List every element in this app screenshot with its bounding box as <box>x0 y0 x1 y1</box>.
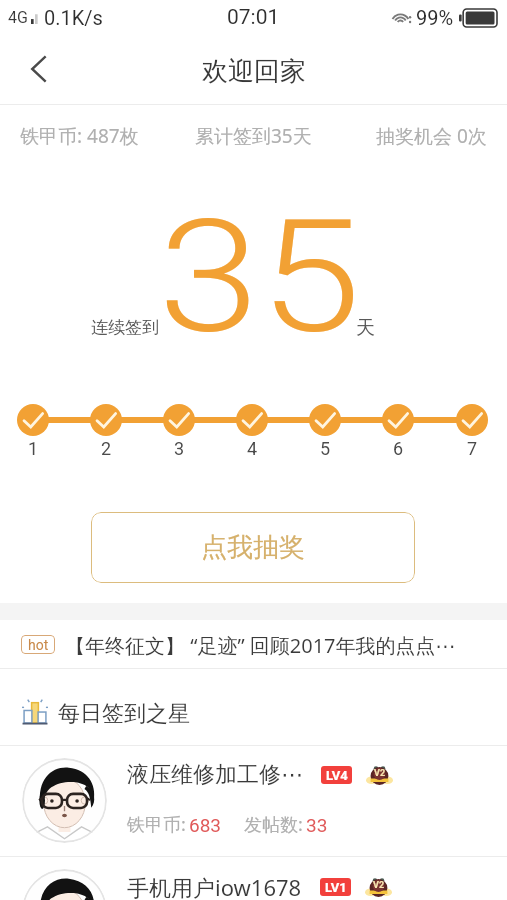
staticText: 683 <box>189 814 222 836</box>
staticText: 5 <box>320 438 331 459</box>
staticText: 4 <box>247 438 258 459</box>
staticText: 07:01 <box>227 5 280 30</box>
staticText: 4G <box>8 8 28 27</box>
staticText: 点我抽奖 <box>201 531 305 564</box>
staticText: 0.1K/s <box>44 6 103 29</box>
staticText: 3 <box>174 438 185 459</box>
staticText: 33 <box>306 814 328 836</box>
staticText: 抽奖机会 0次 <box>376 123 487 149</box>
staticText: 累计签到35天 <box>195 123 312 149</box>
staticText: 天 <box>356 316 375 340</box>
staticText: 欢迎回家 <box>202 55 306 88</box>
button[interactable]: Back <box>0 34 76 104</box>
button[interactable]: 液压维修加工修⋯ <box>0 746 507 856</box>
staticText: 每日签到之星 <box>58 700 190 728</box>
staticText: LV1 <box>325 880 347 895</box>
staticText: V2 <box>373 880 385 891</box>
staticText: 99% <box>416 6 454 29</box>
staticText: 35 <box>158 186 361 368</box>
staticText: hot <box>28 637 49 653</box>
staticText: 手机用户iow1678 <box>127 872 302 900</box>
staticText: LV4 <box>326 768 348 783</box>
staticText: 2 <box>101 438 112 459</box>
staticText: 液压维修加工修⋯ <box>127 761 303 789</box>
button[interactable]: 手机用户iow1678 <box>0 857 507 900</box>
staticText: 发帖数: <box>244 812 303 837</box>
staticText: 铁甲币: 487枚 <box>20 123 139 149</box>
staticText: 【年终征文】 “足迹” 回顾2017年我的点点⋯ <box>65 632 456 659</box>
button[interactable]: hot <box>0 621 507 668</box>
button[interactable]: 点我抽奖 <box>91 512 415 583</box>
staticText: 铁甲币: <box>127 812 186 837</box>
staticText: 7 <box>467 438 478 459</box>
staticText: 1 <box>28 438 39 459</box>
staticText: 6 <box>393 438 404 459</box>
staticText: 连续签到 <box>91 317 159 338</box>
staticText: V2 <box>374 768 386 779</box>
